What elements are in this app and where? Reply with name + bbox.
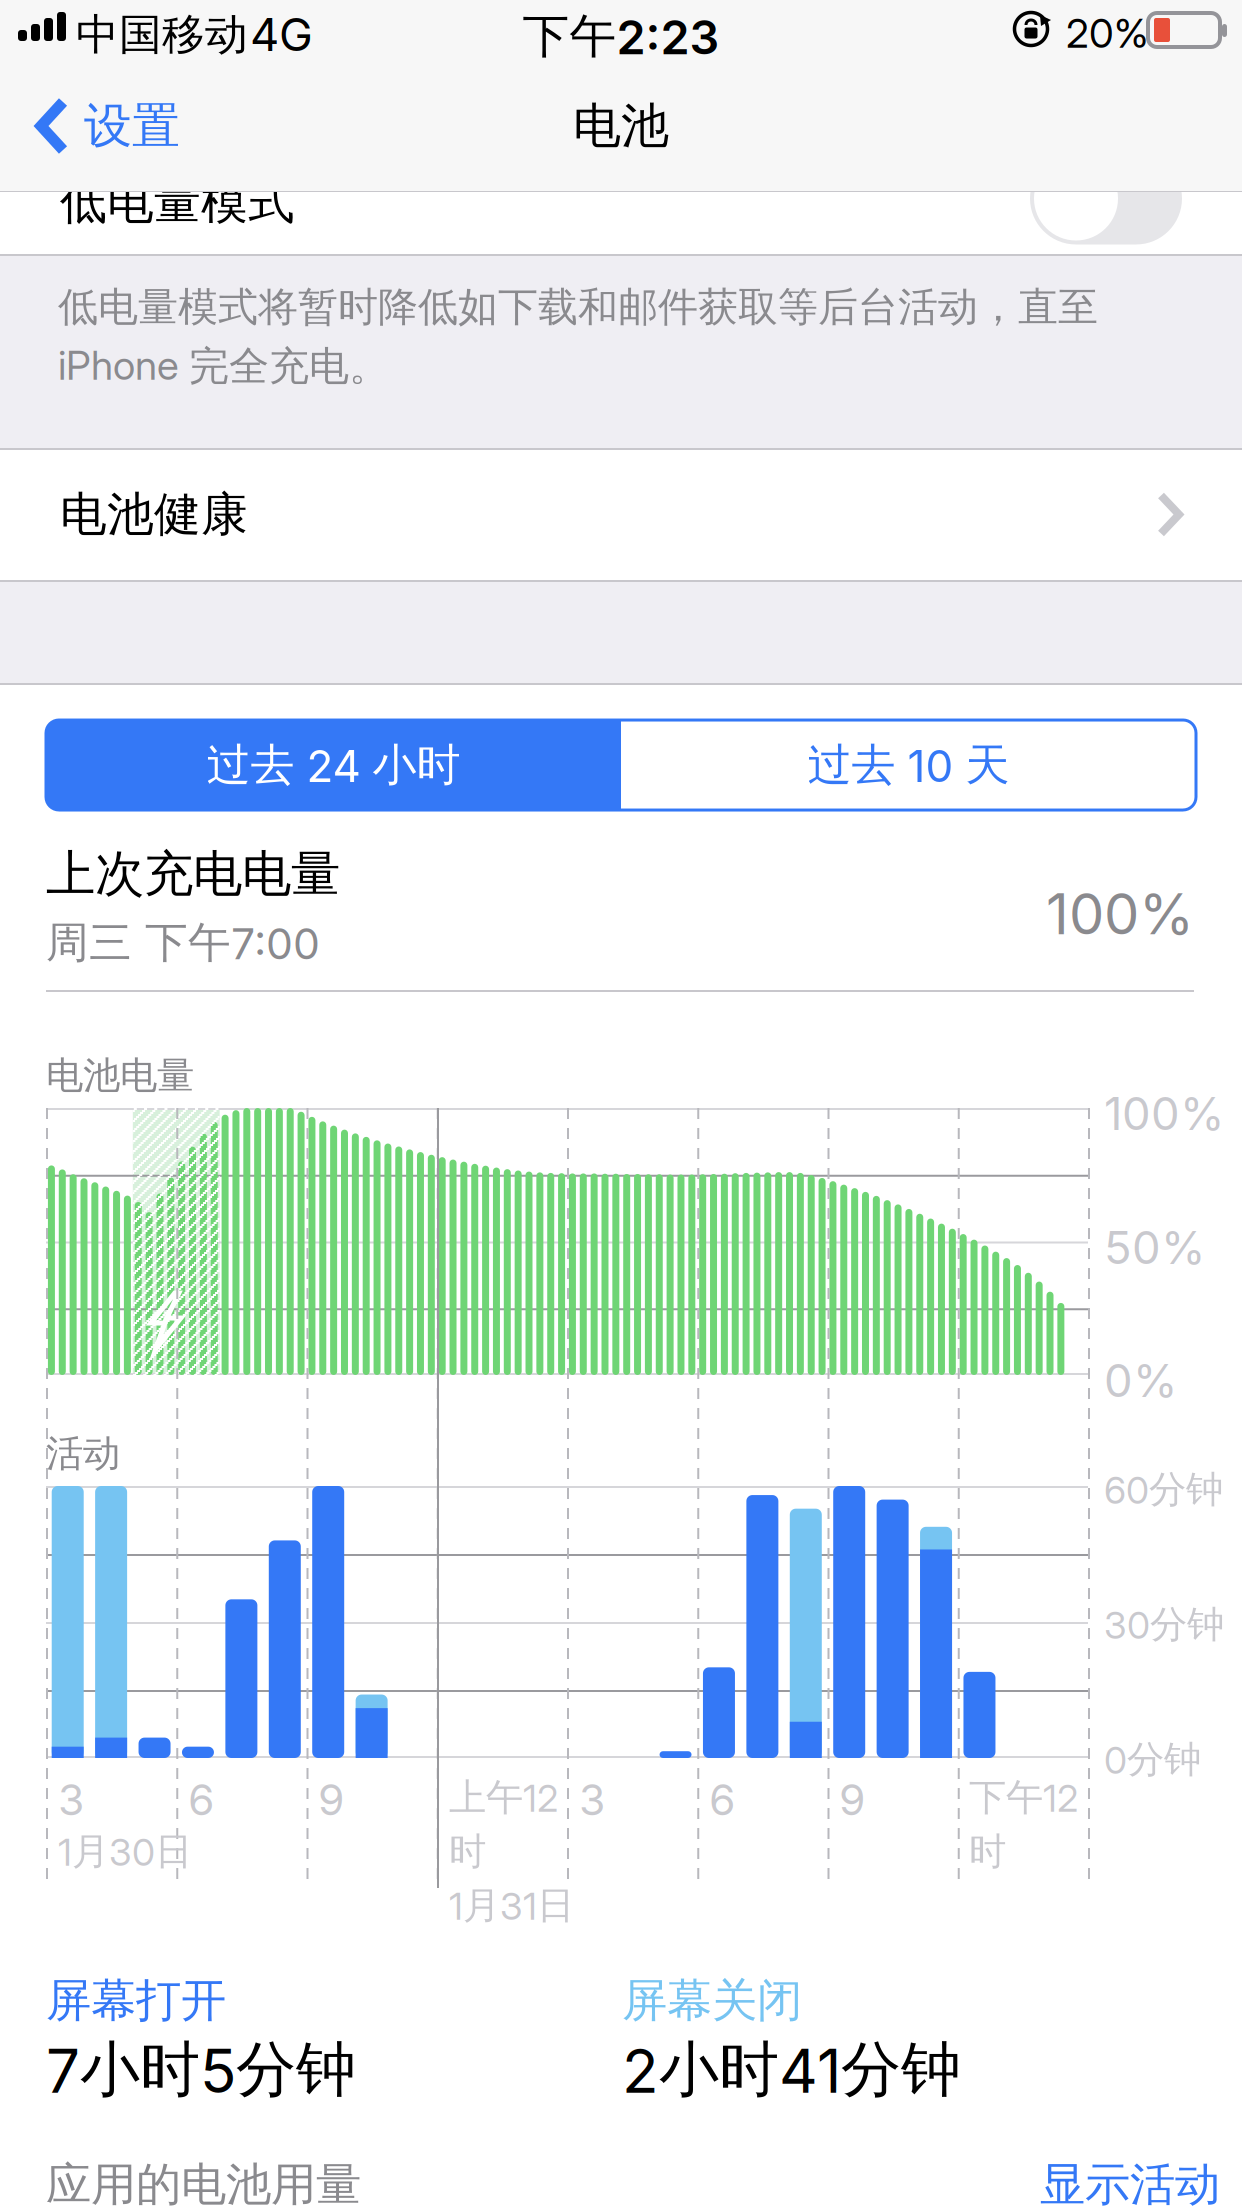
staticText: 中国移动 [76,8,248,62]
staticText: iPhone 完全充电。 [58,341,389,392]
staticText: 1月31日 [449,1882,574,1929]
staticText: 1月30日 [58,1828,192,1875]
staticText: 3 [58,1774,84,1826]
staticText: 电池电量 [46,1052,194,1099]
staticText: 上午12 [449,1774,558,1821]
staticText: 屏幕关闭 [622,1972,802,2029]
button[interactable]: 低电量模式 [0,193,1242,256]
button[interactable]: 过去 24 小时 [46,720,621,810]
staticText: 上次充电电量 [46,843,340,905]
staticText: 100% [1104,1086,1225,1141]
staticText: 30分钟 [1104,1601,1224,1648]
button[interactable]: 设置 [0,60,180,192]
staticText: 下午12 [969,1774,1078,1821]
staticText: 周三 下午7:00 [46,916,320,970]
staticText: 6 [188,1774,214,1826]
staticText: 低电量模式将暂时降低如下载和邮件获取等后台活动，直至 [58,282,1098,332]
staticText: 活动 [46,1430,120,1477]
button[interactable]: 过去 10 天 [621,720,1196,810]
staticText: 9 [839,1774,865,1826]
staticText: 电池健康 [60,485,248,544]
staticText: 2小时41分钟 [622,2032,961,2108]
staticText: 设置 [84,96,180,156]
staticText: 时 [969,1828,1006,1875]
staticText: 0分钟 [1104,1736,1201,1783]
staticText: 时 [449,1828,486,1875]
staticText: 过去 10 天 [807,737,1009,793]
staticText: 过去 24 小时 [206,737,460,793]
staticText: 60分钟 [1104,1466,1223,1513]
staticText: 屏幕打开 [46,1972,226,2029]
staticText: 低电量模式 [60,173,295,232]
button[interactable]: 显示活动 [1040,2156,1220,2208]
staticText: 4G [250,7,313,62]
staticText: 50% [1104,1220,1206,1275]
staticText: 9 [318,1774,344,1826]
staticText: 20% [1066,9,1148,57]
staticText: 3 [579,1774,605,1826]
staticText: 6 [709,1774,735,1826]
staticText: 显示活动 [1040,2156,1220,2208]
staticText: 下午2:23 [522,7,719,66]
staticText: 7小时5分钟 [46,2032,356,2108]
staticText: 电池 [573,96,669,156]
staticText: 应用的电池用量 [46,2156,361,2208]
staticText: 0% [1104,1353,1178,1408]
button[interactable]: 电池健康 [0,449,1242,580]
staticText: 100% [1046,880,1194,948]
